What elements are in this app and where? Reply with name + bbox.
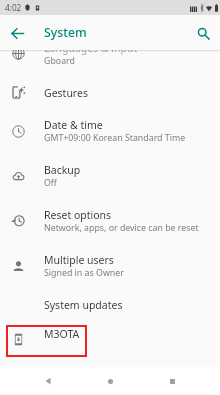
button[interactable]: Date & time [0, 109, 220, 153]
staticText: Network, apps, or device can be reset [44, 222, 199, 234]
staticText: Off [44, 177, 57, 189]
staticText: 4:02 [5, 2, 22, 13]
button[interactable]: Home [96, 367, 124, 395]
button[interactable]: Recent apps [158, 367, 186, 395]
staticText: Reset options [44, 208, 112, 222]
button[interactable]: System updates [0, 289, 220, 320]
button[interactable]: Search [186, 16, 220, 50]
staticText: Signed in as Owner [44, 267, 124, 279]
staticText: System [44, 24, 87, 41]
button[interactable]: Multiple users [0, 243, 220, 289]
staticText: Date & time [44, 118, 103, 132]
staticText: M3OTA [44, 327, 80, 341]
staticText: System updates [44, 298, 123, 312]
staticText: Gboard [44, 55, 75, 67]
button[interactable]: Backup [0, 153, 220, 198]
button[interactable]: Gestures [0, 76, 220, 109]
staticText: Gestures [44, 86, 88, 100]
button[interactable]: Back [34, 367, 62, 395]
staticText: Languages & input [44, 50, 138, 55]
button[interactable]: Reset options [0, 198, 220, 243]
button[interactable]: M3OTA [0, 320, 220, 348]
staticText: Backup [44, 163, 81, 177]
staticText: GMT+09:00 Korean Standard Time [44, 132, 186, 144]
button[interactable]: Languages & input [0, 50, 220, 76]
staticText: Multiple users [44, 253, 114, 267]
button[interactable]: Navigate up [0, 16, 34, 50]
